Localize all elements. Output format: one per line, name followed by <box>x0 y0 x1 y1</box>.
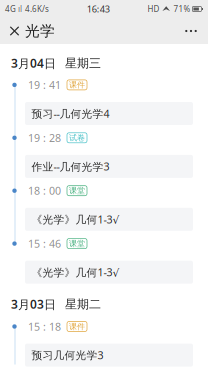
staticText: 15 : 46 <box>28 236 61 251</box>
staticText: 星期二 <box>65 297 101 311</box>
button[interactable]: Close <box>4 18 25 44</box>
button[interactable]: 《光学》几何1-3√ <box>25 208 193 231</box>
button[interactable]: 预习--几何光学4 <box>25 102 193 125</box>
staticText: 光学 <box>25 22 55 40</box>
staticText: 课堂 <box>69 186 85 196</box>
button[interactable]: 作业--几何光学3 <box>25 155 193 178</box>
staticText: 预习--几何光学4 <box>31 106 109 121</box>
staticText: 4G <box>5 4 16 14</box>
staticText: 课堂 <box>69 239 85 248</box>
staticText: 16:43 <box>87 3 110 15</box>
staticText: 星期三 <box>65 56 101 70</box>
button[interactable]: 预习几何光学3 <box>25 344 193 367</box>
staticText: 《光学》几何1-3√ <box>31 265 119 279</box>
staticText: 19 : 41 <box>28 78 61 92</box>
staticText: ıl <box>18 4 22 14</box>
staticText: 试卷 <box>69 133 85 143</box>
staticText: 3月03日 <box>11 296 56 312</box>
staticText: 预习几何光学3 <box>31 348 103 362</box>
button[interactable]: 《光学》几何1-3√ <box>25 261 193 284</box>
staticText: 作业--几何光学3 <box>31 159 109 173</box>
button[interactable]: More options <box>178 18 204 44</box>
staticText: 15 : 18 <box>28 319 61 334</box>
staticText: 4.6K/s <box>25 4 49 14</box>
staticText: 课件 <box>69 322 85 331</box>
staticText: 课件 <box>69 80 85 90</box>
staticText: 19 : 28 <box>28 131 61 145</box>
staticText: 18 : 00 <box>28 184 61 198</box>
staticText: 71% <box>173 4 190 14</box>
staticText: HD <box>147 4 159 14</box>
staticText: 3月04日 <box>11 55 56 71</box>
staticText: 《光学》几何1-3√ <box>31 212 119 226</box>
